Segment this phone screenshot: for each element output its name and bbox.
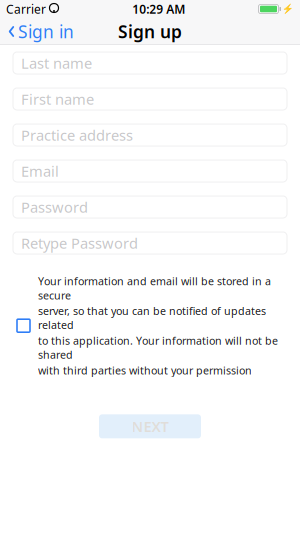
button[interactable]: Retype Password xyxy=(13,232,287,254)
button[interactable]: Sign in xyxy=(0,18,82,45)
staticText: Email xyxy=(21,161,59,181)
button[interactable]: Email xyxy=(13,160,287,182)
staticText: Password xyxy=(21,197,88,217)
button[interactable]: Practice address xyxy=(13,124,287,146)
button[interactable]: NEXT xyxy=(99,414,201,438)
button[interactable]: Password xyxy=(13,196,287,218)
staticText: NEXT xyxy=(131,417,168,436)
staticText: Practice address xyxy=(21,125,133,145)
staticText: Your information and email will be store… xyxy=(38,274,271,302)
staticText: server, so that you can be notified of u… xyxy=(38,304,266,332)
staticText: Last name xyxy=(21,53,92,73)
staticText: Carrier xyxy=(6,1,46,17)
button[interactable]: Last name xyxy=(13,52,287,74)
staticText: First name xyxy=(21,89,94,109)
button[interactable]: Accept information storage terms xyxy=(13,315,34,336)
staticText: ⚡ xyxy=(282,4,294,14)
staticText: 10:29 AM xyxy=(132,1,185,17)
staticText: Retype Password xyxy=(21,233,138,253)
staticText: with third parties without your permissi… xyxy=(38,363,252,377)
staticText: to this application. Your information wi… xyxy=(38,333,278,362)
staticText: Sign in xyxy=(18,20,74,43)
staticText: Sign up xyxy=(118,20,182,43)
button[interactable]: First name xyxy=(13,88,287,110)
